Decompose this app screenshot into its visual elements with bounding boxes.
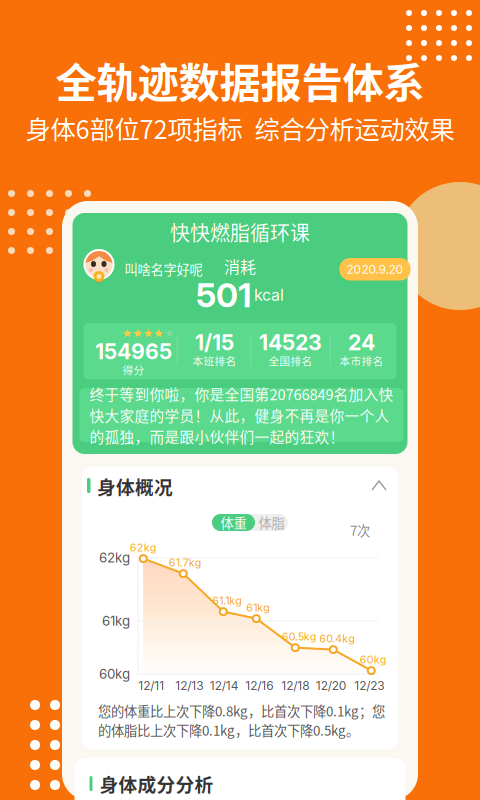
staticText: 全轨迹数据报告体系 (55, 50, 424, 110)
staticText: 62kg (130, 541, 157, 554)
staticText: kcal (254, 285, 284, 305)
staticText: 消耗 (224, 254, 256, 278)
staticText: 60kg (360, 653, 387, 666)
button[interactable]: 体重 (212, 514, 255, 531)
staticText: 本市排名 (339, 353, 383, 368)
staticText: 154965 (95, 339, 172, 364)
staticText: 终于等到你啦，你是全国第20766849名加入快快大家庭的学员！从此，健身不再是… (89, 383, 393, 447)
staticText: 12/14 (210, 678, 239, 693)
staticText: 14523 (259, 330, 322, 355)
staticText: 本班排名 (192, 353, 236, 368)
staticText: 24 (348, 330, 375, 355)
staticText: 12/13 (175, 678, 203, 693)
staticText: 全国排名 (268, 353, 312, 368)
staticText: 得分 (122, 362, 144, 377)
staticText: 身体成分分析 (99, 770, 213, 797)
staticText: 1/15 (195, 330, 234, 355)
staticText: 体重 (220, 513, 246, 532)
staticText: 61kg (246, 601, 270, 614)
staticText: 体脂 (258, 513, 284, 532)
staticText: 60.5kg (282, 630, 317, 643)
staticText: 12/23 (354, 678, 384, 693)
staticText: 60kg (99, 666, 130, 682)
staticText: 61.7kg (169, 556, 202, 569)
button[interactable]: 体脂 (255, 514, 288, 531)
staticText: 61.1kg (212, 594, 242, 607)
staticText: 501 (196, 275, 252, 315)
staticText: 2020.9.20 (346, 262, 403, 276)
staticText: 您的体重比上次下降0.8kg，比首次下降0.1kg；您的体脂比上次下降0.1kg… (98, 701, 385, 740)
staticText: 身体6部位72项指标 综合分析运动效果 (25, 110, 454, 146)
staticText: 7次 (350, 520, 370, 540)
staticText: 身体概况 (97, 472, 173, 499)
staticText: 60.4kg (319, 632, 355, 645)
staticText: 叫啥名字好呢 (124, 259, 202, 279)
staticText: 12/20 (316, 678, 347, 693)
staticText: 快快燃脂循环课 (170, 217, 310, 246)
staticText: 61kg (102, 613, 130, 629)
staticText: 12/18 (281, 678, 309, 693)
staticText: 12/16 (245, 678, 273, 693)
staticText: 62kg (99, 550, 130, 566)
staticText: 12/11 (138, 678, 164, 693)
